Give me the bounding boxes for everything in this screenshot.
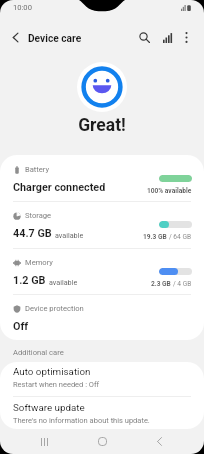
staticText: available (49, 278, 78, 286)
staticText: 44.7 GB (13, 227, 52, 240)
staticText: 100% available (147, 187, 192, 195)
staticText: Memory (25, 258, 53, 267)
staticText: There's no information about this update… (13, 416, 150, 425)
staticText: Device care (28, 33, 82, 45)
staticText: Restart when needed : Off (13, 380, 100, 389)
staticText: Storage (25, 211, 52, 220)
staticText: Software update (13, 402, 85, 413)
button[interactable]: Auto optimisation (0, 362, 204, 395)
staticText: Device protection (25, 304, 84, 313)
button[interactable]: Recent apps (22, 429, 67, 454)
button[interactable]: Navigate up (5, 27, 26, 48)
staticText: Off (13, 320, 29, 333)
button[interactable]: Search (134, 27, 155, 48)
button[interactable]: Memory (0, 248, 204, 294)
button[interactable]: Software update (0, 398, 204, 429)
staticText: 2.3 GB (151, 280, 171, 288)
staticText: 10:00 (13, 3, 32, 12)
staticText: available (55, 231, 84, 239)
button[interactable]: Battery (0, 155, 204, 201)
button[interactable]: More options (176, 27, 197, 48)
button[interactable]: Home (80, 429, 125, 454)
staticText: Great! (0, 115, 204, 136)
staticText: 1.2 GB (13, 274, 46, 287)
button[interactable]: Device protection (0, 294, 204, 340)
staticText: Additional care (13, 348, 64, 357)
staticText: 19.3 GB (143, 233, 167, 241)
staticText: / 4 GB (173, 280, 192, 288)
staticText: Charger connected (13, 181, 106, 194)
staticText: Battery (25, 165, 50, 174)
staticText: / 64 GB (169, 233, 192, 241)
button[interactable]: Storage (0, 201, 204, 247)
button[interactable]: Usage statistics (157, 27, 178, 48)
staticText: Auto optimisation (13, 366, 91, 377)
button[interactable]: Back (137, 429, 182, 454)
